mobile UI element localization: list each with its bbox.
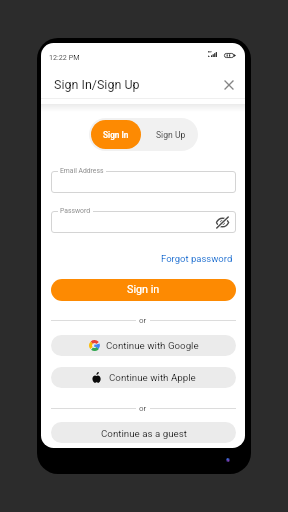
button[interactable]: Sign in xyxy=(51,279,236,301)
staticText: Sign Up xyxy=(156,130,186,140)
staticText: Email Address xyxy=(60,167,104,175)
button[interactable]: Toggle password visibility xyxy=(215,215,229,229)
staticText: Sign in xyxy=(127,283,160,296)
staticText: Sign In/Sign Up xyxy=(54,77,140,92)
staticText: Continue with Apple xyxy=(109,372,196,383)
button[interactable] xyxy=(51,171,236,193)
staticText: Sign In xyxy=(103,130,129,140)
button[interactable]: Sign In xyxy=(91,120,141,149)
button[interactable]: Sign Up xyxy=(143,118,198,151)
button[interactable]: Forgot password xyxy=(161,253,236,264)
button[interactable]: Close xyxy=(219,75,239,95)
button[interactable] xyxy=(51,211,236,233)
button[interactable]: Continue as a guest xyxy=(51,422,236,443)
staticText: or xyxy=(139,404,147,413)
staticText: or xyxy=(139,316,147,325)
button[interactable]: Continue with Apple xyxy=(51,367,236,388)
staticText: Password xyxy=(60,207,91,215)
staticText: 12:22 PM xyxy=(49,53,80,61)
staticText: Continue with Google xyxy=(106,340,199,351)
staticText: Continue as a guest xyxy=(101,428,187,439)
button[interactable]: Continue with Google xyxy=(51,335,236,356)
